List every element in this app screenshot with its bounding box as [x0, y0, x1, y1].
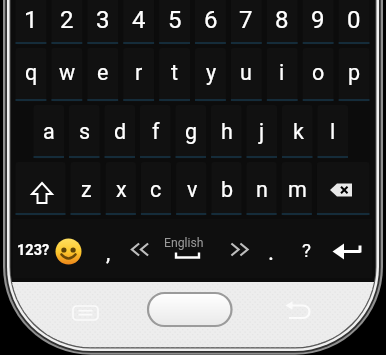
staticText: i [279, 60, 285, 85]
staticText: 2 [60, 6, 74, 34]
button[interactable]: c [136, 167, 176, 211]
button[interactable]: y [191, 50, 231, 94]
button[interactable]: . [251, 230, 291, 274]
staticText: r [135, 60, 143, 85]
button[interactable]: 3 [83, 0, 123, 42]
button[interactable]: m [277, 167, 317, 211]
button[interactable]: 123? [5, 228, 61, 272]
button[interactable]: d [100, 109, 140, 153]
staticText: 6 [204, 6, 218, 34]
button[interactable] [319, 159, 372, 216]
staticText: c [150, 177, 162, 202]
button[interactable]: x [101, 167, 141, 211]
staticText: s [79, 119, 91, 144]
staticText: English [164, 236, 204, 250]
button[interactable] [212, 219, 250, 278]
staticText: 8 [275, 6, 289, 34]
button[interactable]: 6 [191, 0, 231, 42]
button[interactable]: ? [286, 228, 326, 272]
staticText: l [330, 119, 336, 144]
button[interactable]: 7 [226, 0, 266, 42]
button[interactable]: r [119, 50, 159, 94]
button[interactable]: v [172, 167, 212, 211]
staticText: a [43, 119, 55, 144]
button[interactable]: 0 [334, 0, 374, 42]
button[interactable]: 2 [47, 0, 87, 42]
button[interactable]: j [242, 109, 282, 153]
button[interactable]: p [334, 50, 374, 94]
button[interactable]: n [242, 167, 282, 211]
button[interactable] [282, 300, 317, 326]
button[interactable] [68, 300, 103, 326]
button[interactable]: 4 [119, 0, 159, 42]
staticText: q [25, 60, 38, 85]
button[interactable]: 5 [155, 0, 195, 42]
staticText: 5 [168, 6, 182, 34]
button[interactable]: g [171, 109, 211, 153]
staticText: j [259, 119, 265, 144]
staticText: b [221, 177, 234, 202]
button[interactable] [55, 219, 84, 278]
button[interactable]: t [155, 50, 195, 94]
staticText: 4 [132, 6, 146, 34]
button[interactable]: a [29, 109, 69, 153]
staticText: , [106, 240, 111, 266]
staticText: d [114, 119, 127, 144]
staticText: v [187, 177, 198, 202]
button[interactable] [148, 293, 232, 326]
staticText: y [206, 60, 217, 85]
button[interactable]: b [207, 167, 247, 211]
staticText: . [268, 239, 275, 266]
staticText: x [116, 177, 127, 202]
staticText: m [288, 177, 307, 202]
staticText: 7 [239, 6, 253, 34]
button[interactable]: , [88, 231, 128, 275]
staticText: u [240, 60, 252, 85]
staticText: ? [302, 239, 311, 261]
button[interactable] [322, 219, 372, 278]
button[interactable] [160, 219, 212, 278]
staticText: e [97, 60, 109, 85]
staticText: g [185, 119, 198, 144]
button[interactable]: 8 [262, 0, 302, 42]
staticText: 0 [347, 6, 361, 34]
button[interactable]: o [298, 50, 338, 94]
button[interactable] [13, 159, 68, 216]
button[interactable]: s [65, 109, 105, 153]
button[interactable]: k [278, 109, 318, 153]
button[interactable]: w [47, 50, 87, 94]
button[interactable]: u [226, 50, 266, 94]
button[interactable]: i [262, 50, 302, 94]
staticText: 1 [24, 6, 38, 34]
button[interactable]: f [136, 109, 176, 153]
staticText: 123? [17, 242, 50, 259]
staticText: k [293, 119, 304, 144]
staticText: f [152, 119, 160, 144]
staticText: t [171, 60, 179, 85]
staticText: o [312, 60, 325, 85]
button[interactable]: h [207, 109, 247, 153]
staticText: n [256, 177, 268, 202]
button[interactable]: l [313, 109, 353, 153]
button[interactable]: English [154, 221, 214, 265]
staticText: h [221, 119, 233, 144]
staticText: p [348, 60, 361, 85]
staticText: 9 [311, 6, 325, 34]
button[interactable] [131, 219, 160, 278]
button[interactable]: 1 [11, 0, 51, 42]
staticText: w [59, 60, 76, 85]
button[interactable]: q [11, 50, 51, 94]
button[interactable]: e [83, 50, 123, 94]
button[interactable]: z [66, 167, 106, 211]
staticText: 3 [96, 6, 110, 34]
button[interactable]: 9 [298, 0, 338, 42]
staticText: z [81, 177, 92, 202]
